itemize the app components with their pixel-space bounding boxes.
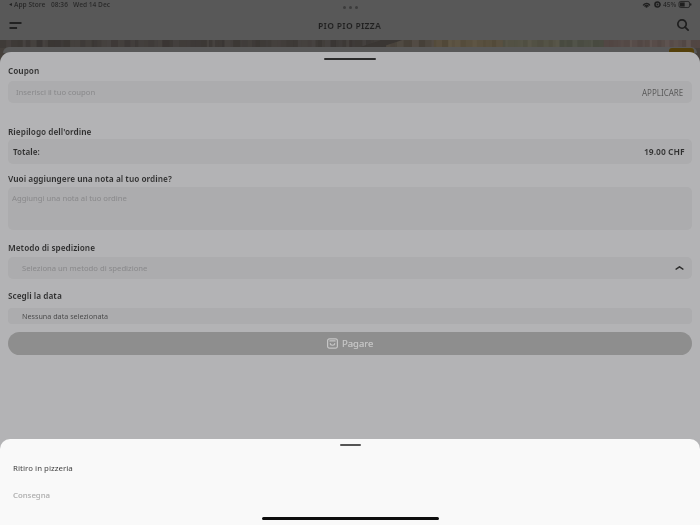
staticText: Consegna	[13, 490, 51, 501]
staticText: 19.00 CHF	[644, 146, 685, 158]
staticText: Nessuna data selezionata	[22, 311, 109, 321]
button[interactable]: Nessuna data selezionata	[8, 308, 692, 324]
staticText: Inserisci il tuo coupon	[16, 87, 96, 97]
staticText: Pagare	[342, 337, 374, 350]
staticText: App Store	[14, 0, 46, 9]
staticText: Riepilogo dell'ordine	[8, 126, 92, 137]
button[interactable]: Ritiro in pizzeria	[0, 457, 700, 479]
staticText: PIO PIO PIZZA	[318, 20, 382, 32]
button[interactable]: Search	[672, 14, 694, 36]
staticText: APPLICARE	[642, 87, 684, 98]
staticText: Aggiungi una nota al tuo ordine	[12, 193, 127, 203]
button[interactable]: Menu	[4, 14, 26, 36]
staticText: Metodo di spedizione	[8, 242, 96, 253]
staticText: Coupon	[8, 65, 40, 76]
staticText: Wed 14 Dec	[73, 0, 111, 9]
button[interactable]: Inserisci il tuo coupon	[8, 81, 692, 103]
button[interactable]: Pagare	[8, 332, 692, 355]
button[interactable]: Consegna	[0, 484, 700, 506]
button[interactable]: Seleziona un metodo di spedizione	[8, 257, 692, 279]
staticText: Totale:	[13, 146, 40, 157]
staticText: Seleziona un metodo di spedizione	[22, 263, 148, 273]
staticText: Scegli la data	[8, 290, 62, 301]
staticText: 08:36	[51, 0, 68, 9]
staticText: 45%	[663, 0, 677, 9]
staticText: Vuoi aggiungere una nota al tuo ordine?	[8, 173, 172, 184]
staticText: Ritiro in pizzeria	[13, 463, 73, 474]
